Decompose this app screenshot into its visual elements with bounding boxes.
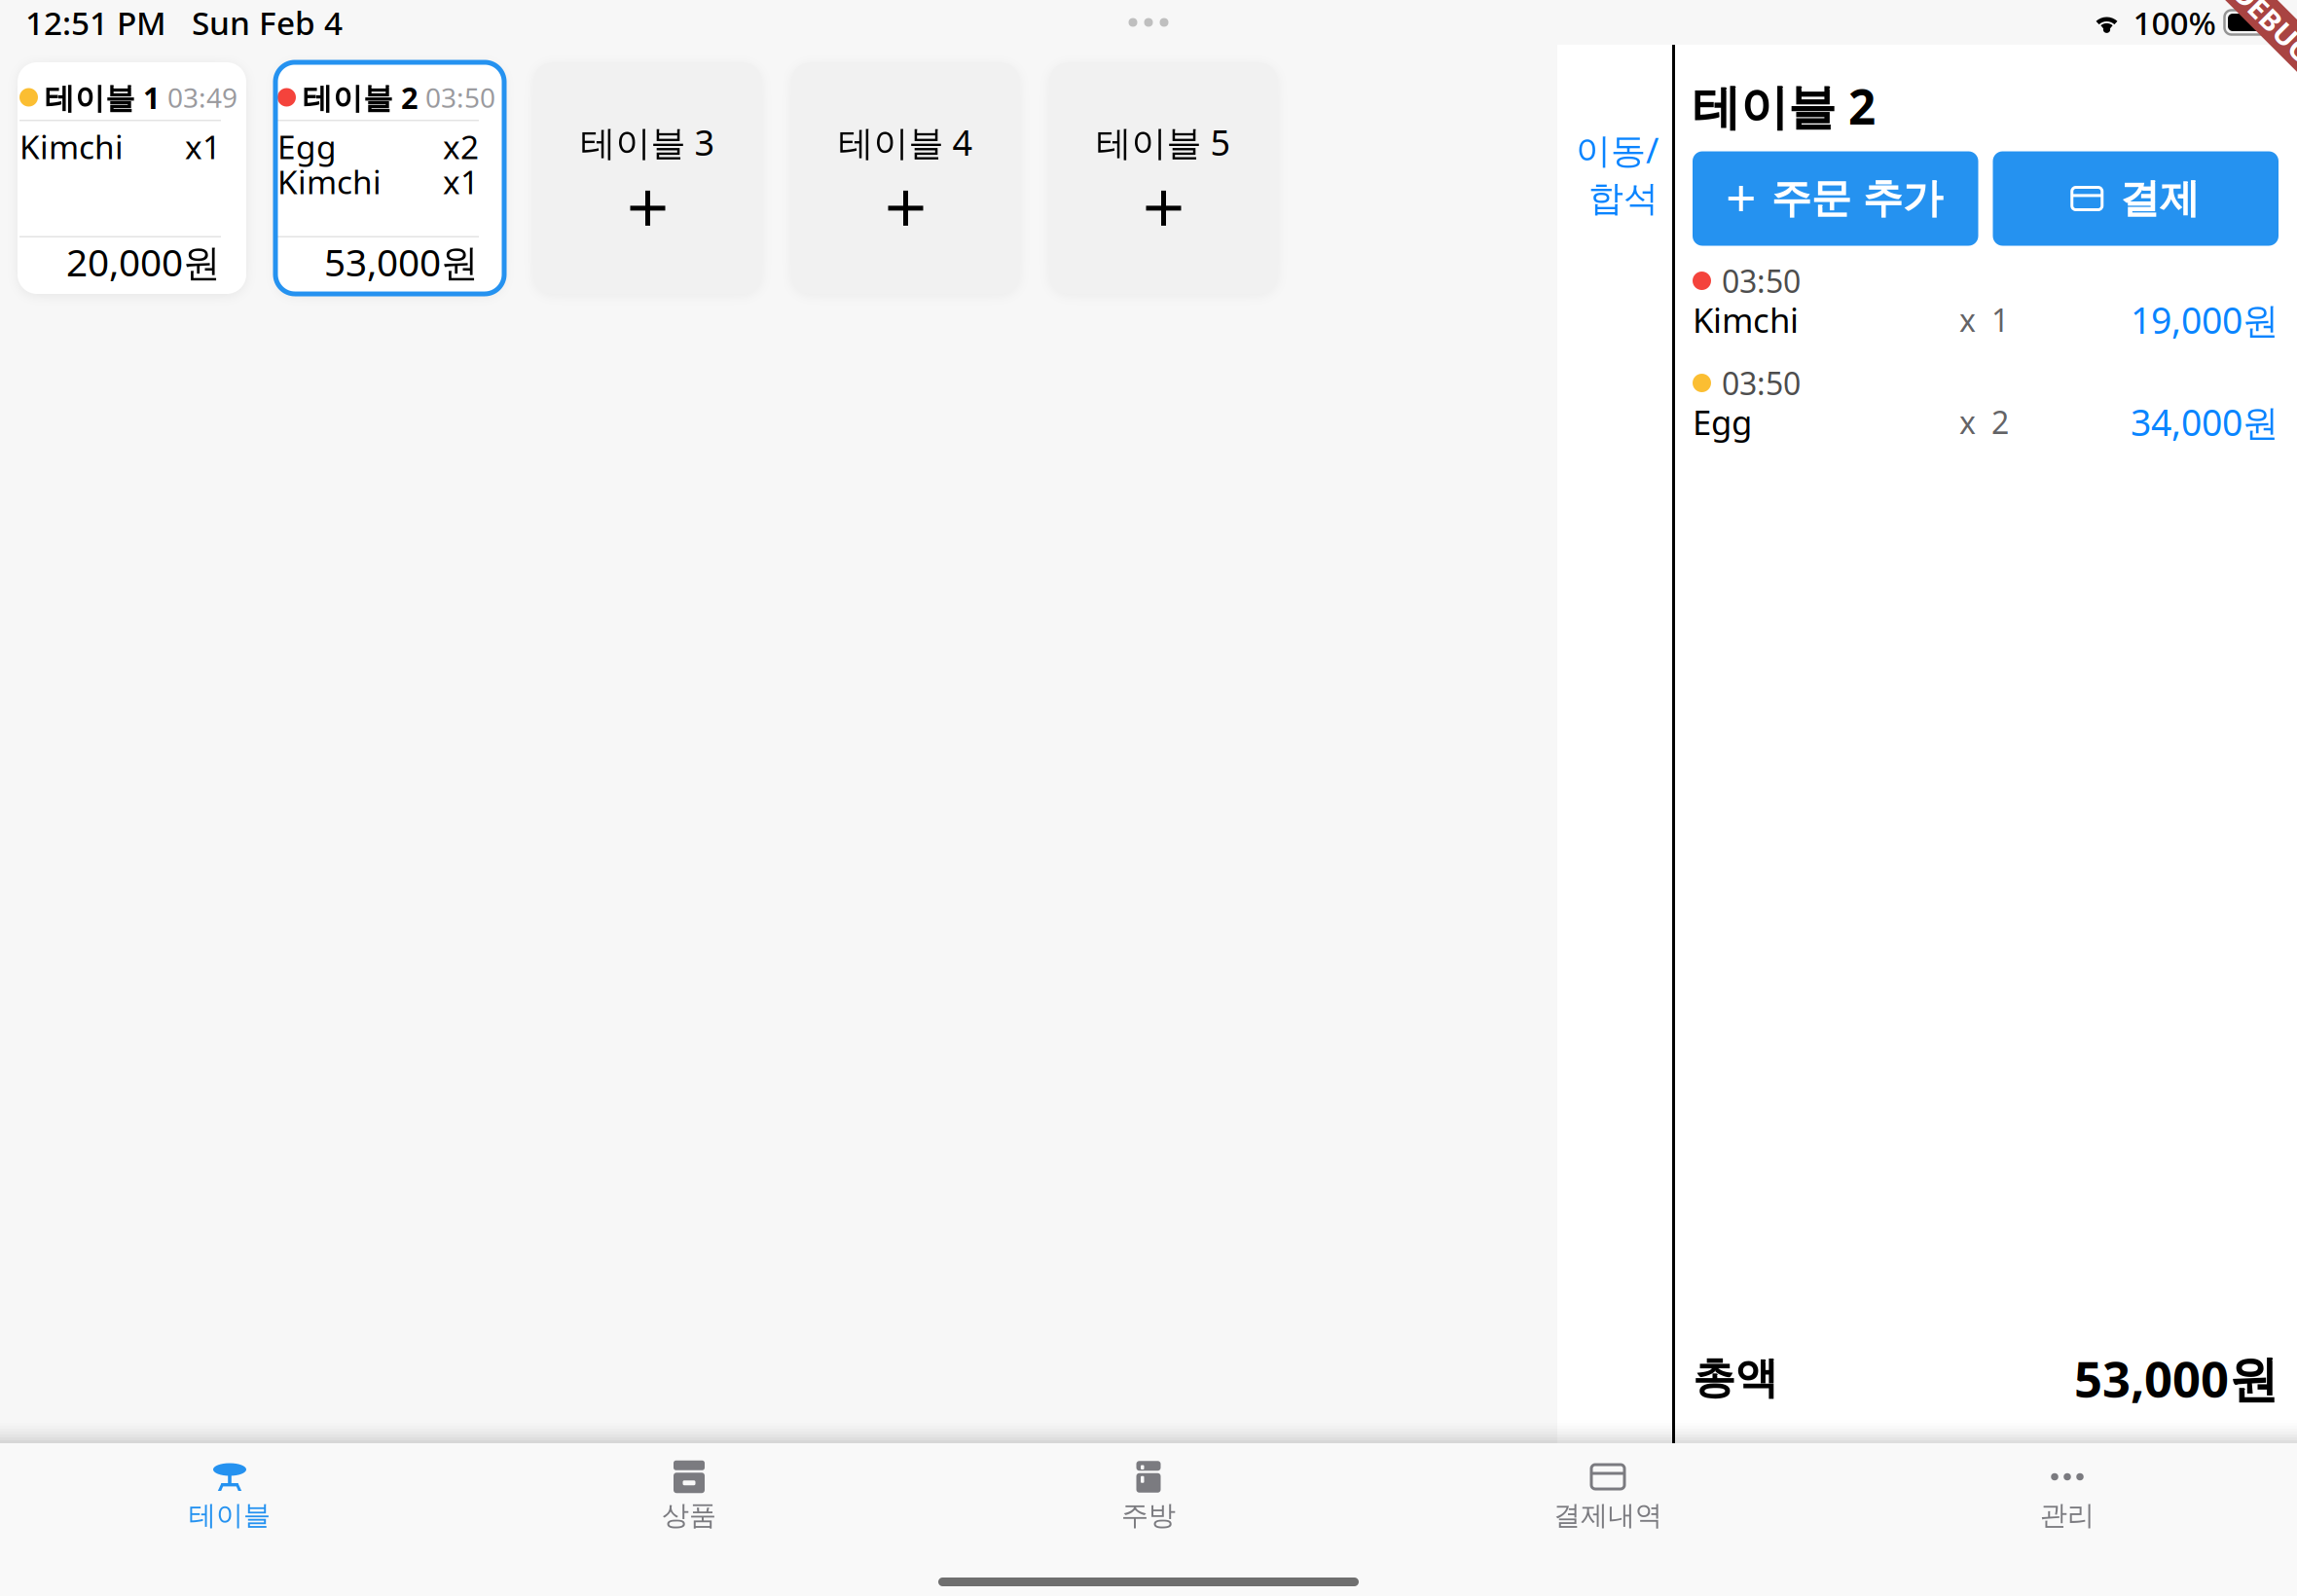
- staticText: 테이블 5: [1096, 119, 1231, 165]
- staticText: x1: [443, 160, 479, 203]
- staticText: 이동/: [1576, 127, 1659, 173]
- staticText: 53,000원: [324, 237, 479, 287]
- staticText: 총액: [1693, 1352, 1778, 1404]
- staticText: 03:49: [167, 79, 237, 115]
- button[interactable]: 이동/합석: [1557, 45, 1672, 1443]
- staticText: 테이블 2: [303, 77, 419, 117]
- staticText: Kimchi: [277, 160, 382, 203]
- staticText: 상품: [662, 1499, 716, 1532]
- staticText: 03:50: [425, 79, 495, 115]
- button[interactable]: 관리: [1838, 1444, 2297, 1596]
- staticText: 결제: [2120, 174, 2199, 223]
- button[interactable]: 테이블 3 주문 시작: [533, 62, 762, 294]
- staticText: Sun Feb 4: [192, 1, 343, 44]
- staticText: Egg: [1693, 399, 1752, 444]
- staticText: Kimchi: [1693, 297, 1799, 342]
- button[interactable]: 주방: [919, 1444, 1378, 1596]
- staticText: Egg: [277, 125, 337, 168]
- staticText: 테이블 1: [45, 77, 161, 117]
- staticText: 100%: [2133, 1, 2216, 44]
- staticText: 53,000원: [2074, 1345, 2279, 1411]
- staticText: x1: [185, 125, 221, 168]
- staticText: 테이블: [189, 1499, 271, 1532]
- staticText: 주문 추가: [1771, 174, 1943, 223]
- staticText: 20,000원: [66, 237, 221, 287]
- staticText: 관리: [2040, 1499, 2095, 1532]
- staticText: 주방: [1121, 1499, 1176, 1532]
- staticText: 결제내역: [1553, 1499, 1662, 1532]
- button[interactable]: 테이블: [0, 1444, 459, 1596]
- staticText: 34,000원: [2131, 398, 2279, 446]
- staticText: 19,000원: [2131, 296, 2279, 344]
- staticText: x 1: [1959, 299, 2009, 340]
- staticText: x2: [443, 125, 479, 168]
- staticText: 03:50: [1722, 362, 1801, 404]
- button[interactable]: 테이블 1: [18, 62, 246, 294]
- staticText: 12:51 PM: [25, 1, 166, 44]
- staticText: Kimchi: [19, 125, 124, 168]
- staticText: x 2: [1959, 401, 2009, 443]
- button[interactable]: 결제: [1993, 151, 2279, 246]
- staticText: 테이블 4: [839, 119, 973, 165]
- button[interactable]: 결제내역: [1378, 1444, 1838, 1596]
- staticText: 테이블 3: [581, 119, 715, 165]
- button[interactable]: 테이블 4 주문 시작: [791, 62, 1020, 294]
- button[interactable]: 주문 추가: [1693, 151, 1978, 246]
- staticText: 합석: [1588, 177, 1659, 220]
- staticText: 03:50: [1722, 260, 1801, 301]
- button[interactable]: 테이블 5 주문 시작: [1049, 62, 1278, 294]
- staticText: 테이블 2: [1693, 74, 1876, 138]
- button[interactable]: 상품: [459, 1444, 919, 1596]
- button[interactable]: 테이블 2: [275, 62, 504, 294]
- staticText: DEBUG: [2217, 21, 2297, 59]
